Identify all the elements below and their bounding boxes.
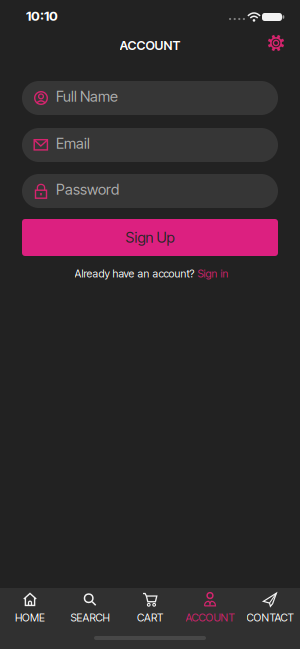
button[interactable]: CART — [120, 588, 180, 628]
staticText: Email — [56, 135, 90, 152]
staticText: ACCOUNT — [185, 611, 234, 624]
staticText: CART — [137, 611, 163, 624]
staticText: Full Name — [56, 88, 118, 105]
button[interactable]: Sign in — [197, 267, 228, 280]
button[interactable]: Email — [22, 128, 278, 162]
button[interactable]: SEARCH — [60, 588, 120, 628]
staticText: 10:10 — [26, 8, 58, 24]
staticText: Sign Up — [125, 229, 174, 246]
button[interactable]: HOME — [0, 588, 60, 628]
staticText: ACCOUNT — [119, 38, 180, 53]
staticText: Password — [56, 181, 119, 198]
button[interactable]: Sign Up — [22, 219, 278, 256]
staticText: HOME — [15, 611, 45, 624]
staticText: Sign in — [197, 267, 228, 280]
button[interactable]: CONTACT — [240, 588, 300, 628]
button[interactable]: Settings — [266, 33, 286, 53]
staticText: SEARCH — [70, 611, 109, 624]
button[interactable]: Password — [22, 174, 278, 208]
button[interactable]: ACCOUNT — [180, 588, 240, 628]
staticText: Already have an account? — [74, 267, 194, 280]
button[interactable]: Full Name — [22, 81, 278, 115]
staticText: CONTACT — [246, 611, 293, 624]
